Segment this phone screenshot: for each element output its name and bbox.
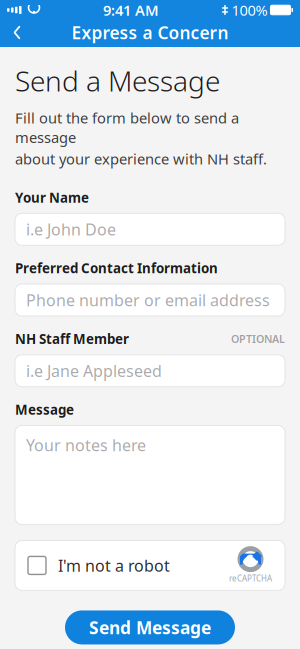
button[interactable]: Send Message	[65, 610, 235, 644]
staticText: Message	[15, 401, 74, 418]
staticText: Send Message	[89, 616, 211, 639]
button[interactable]: Phone number or email address	[15, 284, 285, 316]
staticText: I'm not a robot	[58, 555, 170, 576]
staticText: Preferred Contact Information	[15, 259, 218, 277]
staticText: i.e John Doe	[26, 219, 116, 240]
staticText: Phone number or email address	[26, 289, 270, 311]
staticText: reCAPTCHA	[229, 573, 272, 584]
staticText: about your experience with NH staff.	[15, 149, 267, 169]
staticText: Express a Concern	[71, 21, 228, 44]
staticText: Send a Message	[15, 62, 220, 99]
button[interactable]: Your notes here	[15, 425, 285, 524]
staticText: Fill out the form below to send a messag…	[15, 108, 239, 147]
button[interactable]: i.e Jane Appleseed	[15, 355, 285, 387]
staticText: 100%	[231, 0, 267, 20]
staticText: Your Name	[15, 189, 89, 206]
button[interactable]: i.e John Doe	[15, 213, 285, 245]
staticText: 9:41 AM	[103, 0, 159, 20]
staticText: NH Staff Member	[15, 330, 129, 348]
button[interactable]: I'm not a robot reCAPTCHA	[15, 540, 285, 590]
staticText: Your notes here	[26, 434, 146, 456]
button[interactable]: Back	[0, 20, 34, 45]
staticText: OPTIONAL	[231, 332, 285, 346]
staticText: i.e Jane Appleseed	[26, 360, 162, 381]
